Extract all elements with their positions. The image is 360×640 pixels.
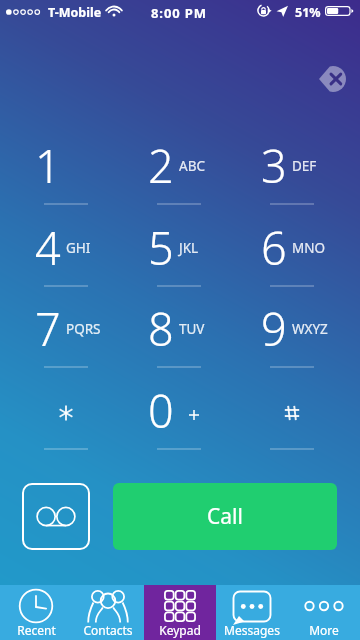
staticText: PQRS <box>66 320 101 338</box>
button[interactable] <box>242 382 342 456</box>
button[interactable]: 7 <box>16 300 116 374</box>
button[interactable]: 0 <box>129 382 229 456</box>
staticText: MNO <box>292 239 326 257</box>
staticText: 6 <box>261 217 287 278</box>
button[interactable]: 2 <box>129 137 229 211</box>
staticText: DEF <box>292 157 317 175</box>
button[interactable]: Contacts <box>72 585 144 640</box>
button[interactable]: Delete <box>319 66 346 92</box>
staticText: 51% <box>295 4 321 21</box>
staticText: T-Mobile <box>48 4 102 21</box>
button[interactable]: Call <box>113 483 337 550</box>
button[interactable] <box>16 382 116 456</box>
staticText: 2 <box>148 135 174 196</box>
staticText: Keypad <box>159 622 201 638</box>
staticText: Contacts <box>83 622 133 638</box>
button[interactable]: Messages <box>216 585 288 640</box>
button[interactable]: Recent <box>0 585 72 640</box>
staticText: GHI <box>66 239 91 257</box>
staticText: Call <box>207 502 243 531</box>
staticText: Recent <box>17 622 56 638</box>
staticText: Messages <box>224 622 280 638</box>
staticText: ABC <box>179 157 205 175</box>
button[interactable]: 1 <box>16 137 116 211</box>
button[interactable]: 8 <box>129 300 229 374</box>
button[interactable]: 6 <box>242 219 342 293</box>
staticText: 8:00 PM <box>151 4 207 22</box>
staticText: 1 <box>35 135 61 196</box>
button[interactable]: 9 <box>242 300 342 374</box>
staticText: WXYZ <box>292 320 328 338</box>
button[interactable]: 5 <box>129 219 229 293</box>
staticText: 4 <box>35 217 61 278</box>
staticText: 5 <box>148 217 174 278</box>
staticText: JKL <box>179 239 199 257</box>
staticText: More <box>309 622 339 638</box>
staticText: 8 <box>148 298 174 359</box>
button[interactable]: Voicemail <box>22 483 90 550</box>
button[interactable]: Keypad <box>144 585 216 640</box>
staticText: 7 <box>35 298 61 359</box>
button[interactable]: 4 <box>16 219 116 293</box>
staticText: TUV <box>179 320 205 338</box>
button[interactable]: 3 <box>242 137 342 211</box>
staticText: 9 <box>261 298 287 359</box>
staticText: 0 <box>148 380 174 441</box>
staticText: 3 <box>261 135 287 196</box>
button[interactable]: More <box>288 585 360 640</box>
